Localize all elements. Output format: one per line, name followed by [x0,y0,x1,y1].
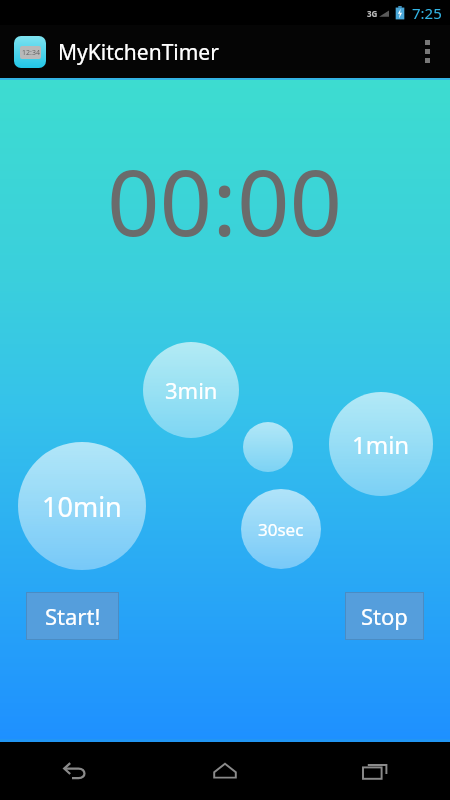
staticText: 3G [367,8,378,19]
staticText: 12:34 [22,48,40,58]
staticText: 1min [352,428,410,461]
staticText: Start! [45,601,101,631]
button[interactable]: 10min [18,442,146,570]
button[interactable]: Home [150,742,300,800]
button[interactable]: Back [0,742,150,800]
button[interactable]: Timer preset [243,422,293,472]
staticText: 7:25 [412,3,442,23]
staticText: 3min [165,375,218,405]
staticText: 10min [42,488,122,525]
staticText: 30sec [258,518,304,541]
button[interactable]: Recent apps [300,742,450,800]
staticText: 00:00 [107,138,343,263]
button[interactable]: 1min [329,392,433,496]
button[interactable]: Start! [26,592,119,640]
staticText: MyKitchenTimer [58,38,219,67]
button[interactable]: More options [404,25,450,78]
button[interactable]: 3min [143,342,239,438]
staticText: Stop [361,601,408,631]
button[interactable]: Stop [345,592,424,640]
button[interactable]: 30sec [241,489,321,569]
